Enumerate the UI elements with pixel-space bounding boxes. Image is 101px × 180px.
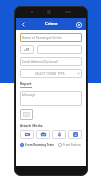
staticText: Email Address(Optional) (22, 60, 58, 64)
button[interactable]: From Roaming Train (20, 142, 55, 148)
button[interactable]: Name of Passenger/Victim (20, 33, 82, 42)
button[interactable]: +91 (20, 45, 34, 54)
button[interactable]: Take photo (36, 130, 50, 139)
staticText: Attach Media (20, 123, 43, 128)
button[interactable]: Attached preview (20, 109, 33, 120)
staticText: Message (22, 93, 36, 97)
staticText: From Station (63, 143, 81, 147)
staticText: Crime (45, 21, 58, 27)
button[interactable]: Record video (20, 130, 34, 139)
staticText: -SELECT CRIME TYPE- (34, 72, 66, 76)
staticText: Name of Passenger/Victim (22, 36, 62, 40)
button[interactable]: Record audio (52, 130, 66, 139)
button[interactable] (37, 45, 82, 54)
staticText: Report (20, 81, 32, 86)
button[interactable]: Back (19, 20, 28, 29)
button[interactable]: Attach file (68, 130, 82, 139)
button[interactable]: Message (20, 91, 82, 106)
button[interactable]: Help (74, 20, 83, 29)
button[interactable]: From Station (58, 142, 81, 148)
button[interactable]: -SELECT CRIME TYPE- (20, 69, 82, 78)
staticText: +91 (24, 48, 30, 52)
staticText: From Roaming Train (25, 143, 55, 147)
button[interactable]: Email Address(Optional) (20, 57, 82, 66)
